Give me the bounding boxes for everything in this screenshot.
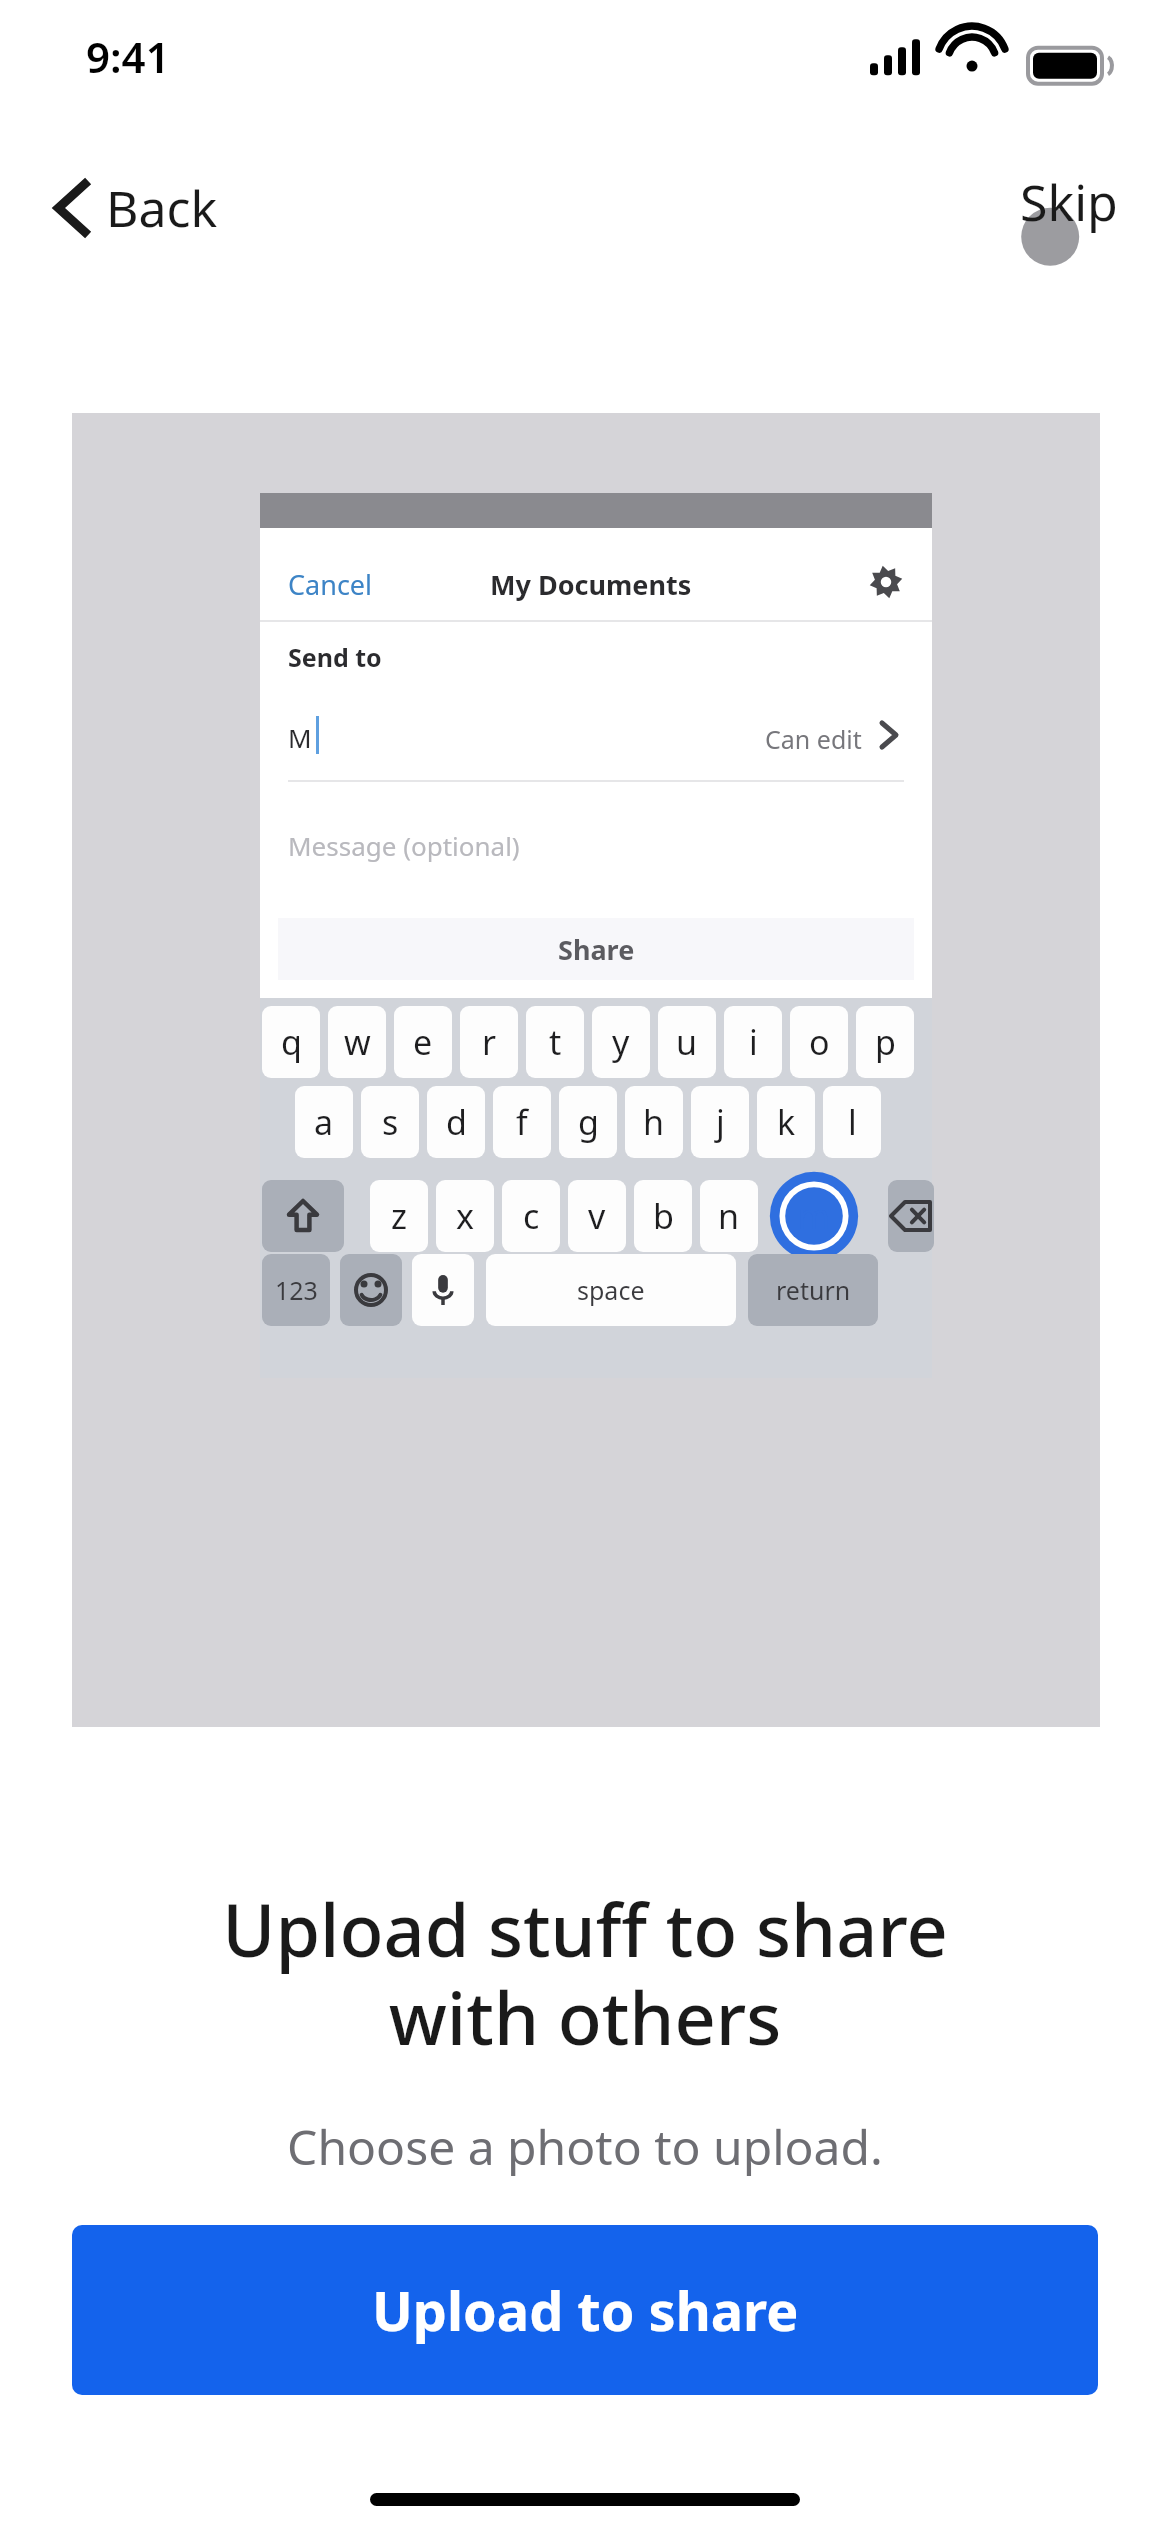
staticText: l — [848, 1099, 857, 1145]
staticText: Back — [106, 174, 218, 242]
button[interactable]: u — [658, 1006, 716, 1078]
button[interactable]: g — [559, 1086, 617, 1158]
button[interactable]: i — [724, 1006, 782, 1078]
button[interactable]: l — [823, 1086, 881, 1158]
staticText: z — [391, 1193, 407, 1239]
button[interactable]: return — [748, 1254, 878, 1326]
button[interactable]: c — [502, 1180, 560, 1252]
staticText: n — [718, 1193, 740, 1239]
button[interactable]: w — [328, 1006, 386, 1078]
staticText: b — [653, 1193, 674, 1239]
staticText: i — [749, 1019, 758, 1065]
staticText: Share — [558, 931, 635, 968]
button[interactable]: Upload to share — [72, 2225, 1098, 2395]
button[interactable]: n — [700, 1180, 758, 1252]
button[interactable]: Backspace — [888, 1180, 934, 1252]
button[interactable]: q — [262, 1006, 320, 1078]
button[interactable]: j — [691, 1086, 749, 1158]
staticText: s — [382, 1099, 399, 1145]
staticText: 123 — [275, 1273, 318, 1307]
staticText: Message (optional) — [288, 828, 520, 863]
staticText: t — [549, 1019, 562, 1065]
button[interactable]: Cancel — [288, 566, 373, 603]
staticText: My Documents — [490, 566, 692, 603]
staticText: y — [612, 1019, 630, 1065]
button[interactable]: y — [592, 1006, 650, 1078]
button[interactable]: e — [394, 1006, 452, 1078]
button[interactable]: f — [493, 1086, 551, 1158]
staticText: w — [344, 1019, 371, 1065]
button[interactable]: o — [790, 1006, 848, 1078]
staticText: d — [446, 1099, 467, 1145]
staticText: f — [516, 1099, 528, 1145]
staticText: v — [588, 1193, 606, 1239]
staticText: o — [809, 1019, 830, 1065]
button[interactable]: 123 — [262, 1254, 330, 1326]
button[interactable]: d — [427, 1086, 485, 1158]
staticText: Skip — [1020, 168, 1118, 236]
staticText: space — [577, 1273, 645, 1307]
button[interactable]: Skip — [975, 160, 1135, 256]
staticText: 9:41 — [86, 28, 170, 85]
staticText: k — [777, 1099, 796, 1145]
button[interactable]: t — [526, 1006, 584, 1078]
button[interactable]: m — [785, 1180, 843, 1252]
button[interactable]: v — [568, 1180, 626, 1252]
staticText: j — [716, 1099, 725, 1145]
button[interactable]: x — [436, 1180, 494, 1252]
staticText: return — [776, 1273, 851, 1307]
button[interactable]: k — [757, 1086, 815, 1158]
staticText: a — [314, 1099, 334, 1145]
button[interactable]: z — [370, 1180, 428, 1252]
staticText: e — [413, 1019, 433, 1065]
button[interactable]: r — [460, 1006, 518, 1078]
button[interactable]: Settings — [868, 564, 904, 600]
button[interactable]: a — [295, 1086, 353, 1158]
button[interactable]: p — [856, 1006, 914, 1078]
staticText: x — [456, 1193, 474, 1239]
staticText: h — [643, 1099, 665, 1145]
button[interactable]: Back — [38, 160, 232, 256]
staticText: Upload stuff to share with others — [70, 1880, 1100, 2066]
staticText: Send to — [288, 640, 382, 674]
button[interactable]: Share — [278, 918, 914, 980]
button[interactable]: Dictate — [412, 1254, 474, 1326]
button[interactable]: Can edit — [765, 722, 862, 756]
staticText: g — [578, 1099, 599, 1145]
button[interactable]: s — [361, 1086, 419, 1158]
staticText: c — [523, 1193, 540, 1239]
staticText: p — [875, 1019, 896, 1065]
staticText: u — [676, 1019, 698, 1065]
button[interactable]: space — [486, 1254, 736, 1326]
staticText: r — [482, 1019, 497, 1065]
button[interactable]: Shift — [262, 1180, 344, 1252]
staticText: q — [281, 1019, 302, 1065]
button[interactable]: Emoji — [340, 1254, 402, 1326]
staticText: M — [288, 720, 312, 755]
button[interactable]: b — [634, 1180, 692, 1252]
staticText: Choose a photo to upload. — [0, 2114, 1170, 2179]
staticText: Upload to share — [372, 2273, 799, 2347]
button[interactable]: h — [625, 1086, 683, 1158]
